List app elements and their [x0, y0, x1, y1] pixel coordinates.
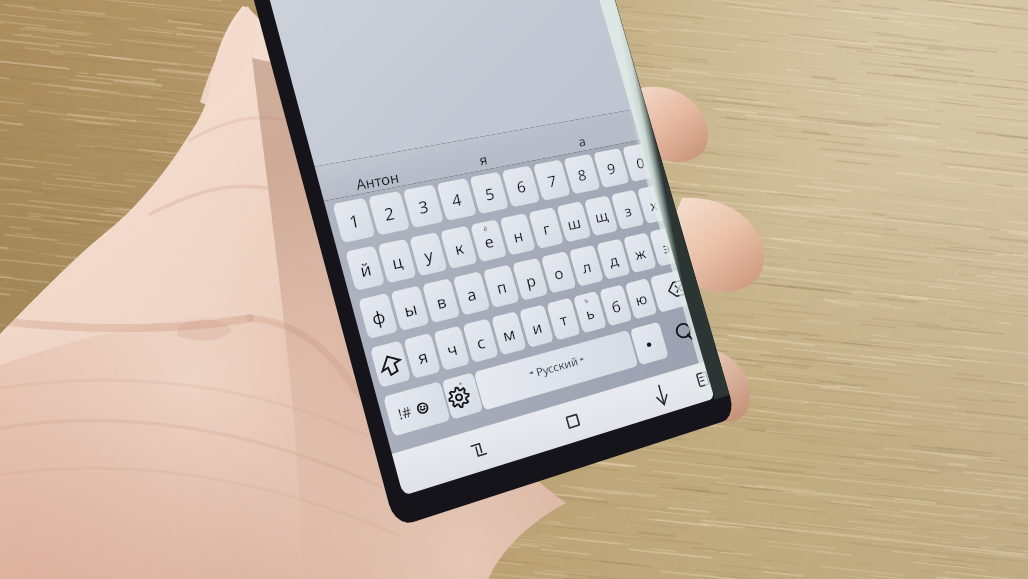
- button[interactable]: Phone with Russian keyboard: [0, 0, 1028, 579]
